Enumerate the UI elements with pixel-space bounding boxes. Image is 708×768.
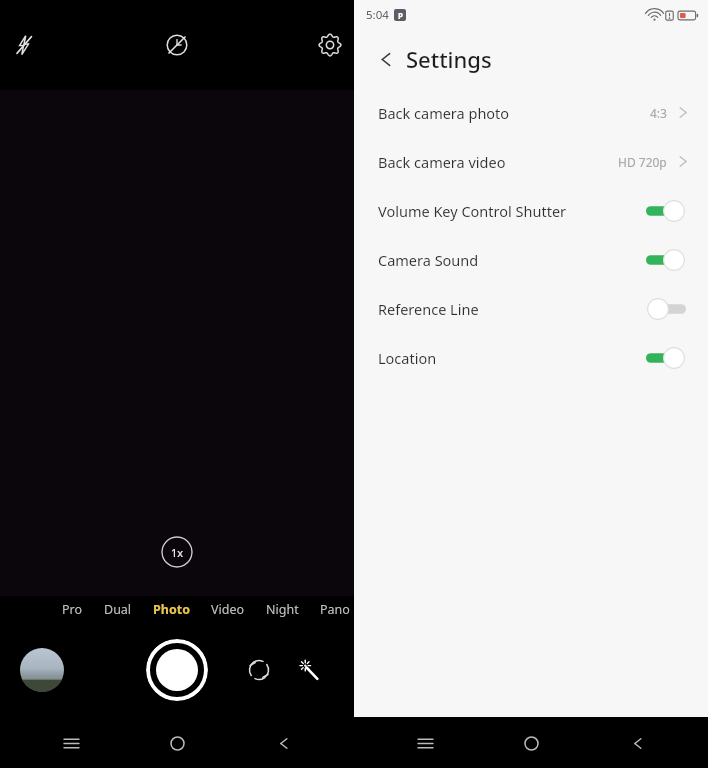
button[interactable]: Night [266,601,299,618]
staticText: Night [266,601,299,618]
button[interactable]: Dual [104,601,132,618]
staticText: Photo [153,601,190,618]
button[interactable]: Recents [408,726,442,760]
button[interactable]: Back [620,726,654,760]
button[interactable]: Back [266,726,300,760]
button[interactable]: Video [211,601,245,618]
staticText: Back camera photo [378,103,510,123]
staticText: P [398,10,403,21]
button[interactable]: Shutter [146,639,208,701]
staticText: Reference Line [378,299,479,319]
staticText: Pro [62,601,83,618]
button[interactable]: Beauty filter [292,653,326,687]
staticText: Camera Sound [378,250,479,270]
button[interactable]: Flash off [7,28,41,62]
button[interactable]: 1x [161,536,193,568]
button[interactable]: Home [160,726,194,760]
staticText: 1x [171,545,184,560]
button[interactable]: Home [514,726,548,760]
button[interactable]: Recents [54,726,88,760]
button[interactable]: Back camera photo [354,88,708,137]
button[interactable]: Reference Line [354,284,708,333]
button[interactable]: Switch camera [242,653,276,687]
button[interactable]: Settings [313,28,347,62]
staticText: Settings [406,44,492,74]
button[interactable]: Location [354,333,708,382]
button[interactable]: Timer off [160,28,194,62]
staticText: 4:3 [650,105,667,121]
staticText: Volume Key Control Shutter [378,201,567,221]
staticText: Dual [104,601,132,618]
button[interactable]: Gallery [20,648,64,692]
staticText: Video [211,601,245,618]
button[interactable]: Back camera video [354,137,708,186]
button[interactable]: Photo [153,601,190,618]
button[interactable]: Pano [320,601,350,618]
button[interactable]: Volume Key Control Shutter [354,186,708,235]
staticText: HD 720p [618,154,667,170]
staticText: Pano [320,601,350,618]
staticText: Back camera video [378,152,506,172]
staticText: 5:04 [366,7,389,23]
button[interactable]: Camera Sound [354,235,708,284]
button[interactable]: Pro [62,601,83,618]
button[interactable]: Back [368,42,402,76]
staticText: Location [378,348,437,368]
